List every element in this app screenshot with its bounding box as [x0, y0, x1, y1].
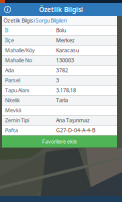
staticText: 3.178,18	[56, 87, 76, 94]
staticText: 3782	[56, 67, 68, 74]
staticText: Bolu	[56, 27, 66, 34]
button[interactable]: Bilgi	[0, 3, 15, 16]
staticText: Tapu Alanı	[5, 87, 29, 94]
staticText: 130003	[56, 57, 74, 64]
staticText: Mahalle No	[5, 57, 32, 64]
button[interactable]: Sorgu Bilgileri	[35, 16, 67, 25]
staticText: Pafta	[5, 127, 18, 134]
button[interactable]: Özetlik Bilgisi	[3, 16, 35, 25]
staticText: Tarla	[56, 97, 68, 104]
staticText: 3	[56, 77, 59, 84]
staticText: Zemin Tipi	[5, 117, 29, 124]
staticText: Özetlik Bilgisi	[3, 17, 34, 24]
staticText: Favorilere ekle	[42, 138, 77, 145]
staticText: Merkez	[56, 37, 75, 44]
staticText: Nitelik	[5, 97, 20, 104]
staticText: Ana Taşınmaz	[56, 117, 90, 124]
staticText: Özetlik Bilgisi	[39, 5, 83, 14]
staticText: Mahalle/Köy	[5, 47, 35, 54]
staticText: İl	[5, 27, 8, 34]
staticText: Parsel	[5, 77, 20, 84]
staticText: Ada	[5, 67, 14, 74]
staticText: Sorgu Bilgileri	[35, 17, 66, 24]
staticText: Mevkii	[5, 107, 21, 114]
button[interactable]: Favorilere ekle	[2, 135, 117, 147]
staticText: G27-D-04-A-4-B	[56, 127, 95, 134]
staticText: İlçe	[5, 37, 14, 44]
staticText: Karacasu	[56, 47, 79, 54]
